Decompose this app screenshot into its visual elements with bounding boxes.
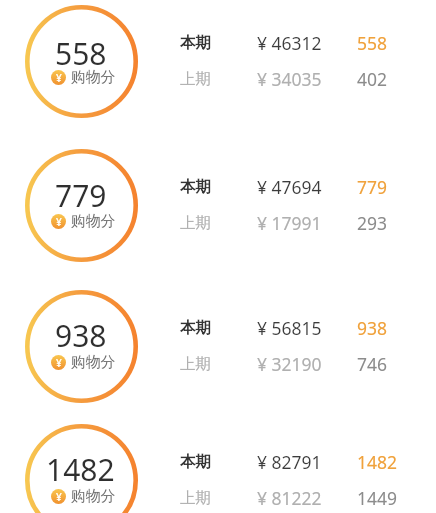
staticText: 779 — [55, 175, 107, 216]
staticText: 779 — [357, 175, 388, 199]
staticText: ¥ 17991 — [257, 211, 322, 235]
staticText: 1482 — [357, 450, 398, 474]
staticText: 938 — [55, 315, 107, 356]
staticText: ¥ — [56, 356, 62, 370]
staticText: 1482 — [46, 449, 115, 490]
button[interactable]: 558 — [0, 0, 436, 127]
staticText: 1449 — [357, 486, 398, 510]
staticText: 293 — [357, 211, 388, 235]
staticText: 746 — [357, 352, 388, 376]
staticText: 上期 — [180, 354, 211, 374]
staticText: 上期 — [180, 213, 211, 233]
staticText: 购物分 — [71, 487, 116, 506]
button[interactable]: 938 — [0, 280, 436, 412]
staticText: ¥ 56815 — [257, 316, 322, 340]
staticText: ¥ 34035 — [257, 67, 322, 91]
staticText: 购物分 — [71, 353, 116, 372]
staticText: ¥ — [56, 490, 62, 504]
button[interactable]: 779 — [0, 139, 436, 271]
staticText: 本期 — [180, 177, 211, 197]
staticText: 402 — [357, 67, 388, 91]
staticText: ¥ 81222 — [257, 486, 322, 510]
staticText: 本期 — [180, 452, 211, 472]
staticText: ¥ 46312 — [257, 31, 322, 55]
staticText: ¥ 47694 — [257, 175, 322, 199]
staticText: 本期 — [180, 318, 211, 338]
staticText: 上期 — [180, 69, 211, 89]
button[interactable]: 1482 — [0, 414, 436, 513]
staticText: ¥ 32190 — [257, 352, 322, 376]
staticText: 购物分 — [71, 68, 116, 87]
staticText: 558 — [55, 33, 107, 74]
staticText: 本期 — [180, 33, 211, 53]
staticText: 558 — [357, 31, 388, 55]
staticText: 购物分 — [71, 212, 116, 231]
staticText: ¥ 82791 — [257, 450, 322, 474]
staticText: 938 — [357, 316, 388, 340]
staticText: 上期 — [180, 488, 211, 508]
staticText: ¥ — [56, 71, 62, 85]
staticText: ¥ — [56, 215, 62, 229]
